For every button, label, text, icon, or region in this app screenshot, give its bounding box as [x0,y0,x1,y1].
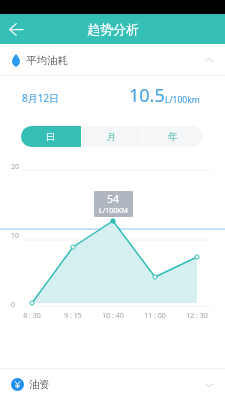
staticText: 11 : 00 [137,311,173,321]
staticText: 油资 [29,378,50,391]
staticText: 年 [168,131,178,143]
staticText: 平均油耗 [26,54,68,67]
staticText: 20 [11,162,20,172]
staticText: 10 : 40 [95,311,131,321]
button[interactable]: 油资 [0,369,225,400]
staticText: 10 [11,231,20,241]
staticText: 54 [107,192,120,206]
staticText: 0 [11,300,16,310]
button[interactable]: 日 [21,126,81,147]
button[interactable]: Back [0,14,31,44]
button[interactable]: 平均油耗 [0,44,225,76]
staticText: 趋势分析 [87,21,139,37]
staticText: 8月12日 [22,91,60,105]
staticText: 12 : 30 [179,311,215,321]
staticText: L/100KM [99,206,128,216]
staticText: 日 [46,131,56,143]
staticText: L/100km [165,94,200,106]
staticText: 8 : 30 [14,311,50,321]
staticText: 月 [107,131,117,143]
button[interactable]: 月 [82,126,142,147]
button[interactable]: 年 [143,126,203,147]
staticText: 9 : 15 [55,311,91,321]
staticText: 10.5 [129,83,165,108]
